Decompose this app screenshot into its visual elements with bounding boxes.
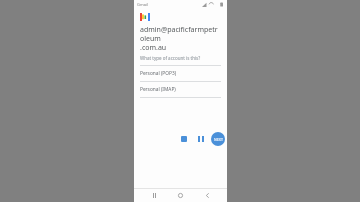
staticText: NEXT xyxy=(214,137,223,142)
staticText: Personal (IMAP) xyxy=(140,86,176,93)
button[interactable]: Back xyxy=(201,189,214,202)
button[interactable]: Personal (POP3) xyxy=(140,66,221,81)
button[interactable]: Personal (IMAP) xyxy=(140,82,221,97)
button[interactable]: Next xyxy=(211,132,225,146)
button[interactable]: Stop xyxy=(177,132,191,146)
staticText: Personal (POP3) xyxy=(140,70,177,77)
staticText: admin@pacificfarmpetroleum .com.au xyxy=(140,25,221,52)
staticText: What type of account is this? xyxy=(140,55,201,61)
staticText: Gmail xyxy=(137,2,148,7)
button[interactable]: Pause xyxy=(194,132,208,146)
button[interactable]: Home xyxy=(174,189,187,202)
button[interactable]: Recents xyxy=(148,189,161,202)
